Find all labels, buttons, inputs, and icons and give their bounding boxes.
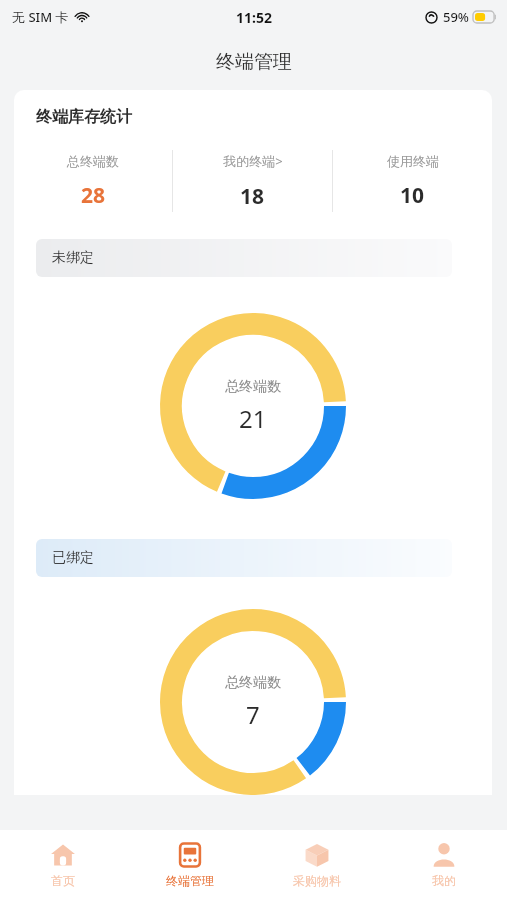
staticText: 首页: [51, 873, 75, 888]
button[interactable]: 使用终端: [333, 145, 492, 217]
staticText: 总终端数: [225, 674, 281, 692]
staticText: 终端管理: [166, 873, 214, 888]
staticText: 59%: [443, 8, 469, 26]
staticText: 28: [81, 181, 106, 210]
button[interactable]: 我的终端>: [173, 145, 332, 217]
button[interactable]: 已绑定: [36, 539, 452, 577]
staticText: 终端管理: [216, 50, 292, 74]
staticText: 总终端数: [67, 153, 119, 169]
staticText: 总终端数: [225, 378, 281, 396]
button[interactable]: 总终端数: [14, 145, 172, 217]
staticText: 使用终端: [387, 153, 439, 169]
button[interactable]: 我的: [380, 830, 507, 900]
staticText: 采购物料: [293, 873, 341, 888]
staticText: 18: [240, 182, 265, 211]
button[interactable]: 采购物料: [253, 830, 380, 900]
staticText: 21: [239, 402, 267, 435]
button[interactable]: 终端管理: [126, 830, 253, 900]
staticText: 无 SIM 卡: [12, 8, 69, 26]
button[interactable]: 首页: [0, 830, 126, 900]
staticText: 我的: [432, 873, 456, 888]
staticText: 10: [400, 181, 425, 210]
staticText: 7: [246, 698, 260, 731]
staticText: 已绑定: [52, 549, 94, 567]
staticText: 我的终端>: [223, 152, 283, 170]
staticText: 未绑定: [52, 249, 94, 267]
staticText: 11:52: [236, 8, 272, 27]
button[interactable]: 未绑定: [36, 239, 452, 277]
staticText: 终端库存统计: [36, 107, 132, 127]
